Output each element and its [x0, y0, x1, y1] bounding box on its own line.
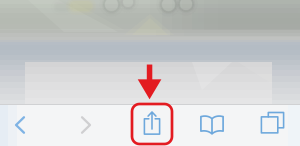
button[interactable]: Bookmarks — [189, 104, 235, 145]
button[interactable]: Back — [0, 104, 43, 145]
button[interactable]: Share — [129, 102, 175, 143]
button[interactable]: Forward — [63, 104, 109, 145]
button[interactable]: Tabs — [249, 102, 295, 143]
